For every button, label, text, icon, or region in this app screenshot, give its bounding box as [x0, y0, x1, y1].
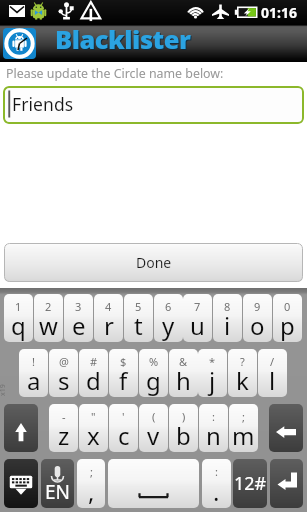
- staticText: Friends: [12, 92, 74, 116]
- button[interactable]: @: [49, 349, 78, 397]
- staticText: ": [91, 409, 96, 424]
- button[interactable]: 7: [183, 294, 212, 342]
- staticText: $: [120, 354, 127, 369]
- staticText: ): [182, 409, 186, 424]
- button[interactable]: 9: [243, 294, 272, 342]
- staticText: *: [209, 354, 216, 369]
- button[interactable]: ;: [229, 404, 258, 452]
- button[interactable]: #: [79, 349, 108, 397]
- staticText: ;: [90, 464, 93, 479]
- button[interactable]: Enter: [270, 459, 303, 508]
- staticText: 1: [15, 299, 22, 314]
- staticText: .: [213, 475, 220, 508]
- staticText: x19: [0, 384, 8, 396]
- staticText: z: [58, 419, 70, 452]
- staticText: (: [152, 409, 156, 424]
- button[interactable]: $: [109, 349, 138, 397]
- button[interactable]: &: [169, 349, 198, 397]
- button[interactable]: %: [139, 349, 168, 397]
- staticText: h: [176, 364, 191, 397]
- staticText: f: [119, 364, 128, 397]
- staticText: m: [232, 419, 255, 452]
- button[interactable]: 4: [94, 294, 123, 342]
- button[interactable]: Backspace: [269, 404, 303, 452]
- staticText: Blacklister: [55, 22, 191, 57]
- button[interactable]: 12#: [233, 459, 267, 508]
- button[interactable]: Space: [108, 459, 199, 508]
- staticText: 5: [135, 299, 142, 314]
- staticText: 7: [194, 299, 201, 314]
- button[interactable]: ': [109, 404, 138, 452]
- button[interactable]: (: [139, 404, 168, 452]
- button[interactable]: 2: [34, 294, 63, 342]
- staticText: #: [90, 354, 98, 369]
- button[interactable]: Friends: [3, 86, 304, 124]
- button[interactable]: :: [202, 459, 231, 508]
- button[interactable]: Hide keyboard: [4, 459, 38, 508]
- staticText: c: [118, 419, 130, 452]
- staticText: EN: [45, 479, 71, 505]
- staticText: 0: [284, 299, 291, 314]
- staticText: :: [212, 409, 215, 424]
- button[interactable]: :: [199, 404, 228, 452]
- staticText: d: [86, 364, 101, 397]
- button[interactable]: !: [19, 349, 48, 397]
- staticText: 12#: [234, 471, 267, 496]
- staticText: ': [122, 409, 125, 424]
- button[interactable]: 5: [124, 294, 153, 342]
- button[interactable]: 1: [4, 294, 33, 342]
- staticText: Please update the Circle name below:: [6, 65, 224, 82]
- staticText: :: [215, 464, 218, 479]
- staticText: t: [134, 309, 143, 342]
- staticText: a: [27, 364, 41, 397]
- staticText: 3: [75, 299, 82, 314]
- staticText: @: [59, 354, 69, 369]
- staticText: s: [58, 364, 70, 397]
- staticText: &: [179, 354, 188, 369]
- staticText: 9: [254, 299, 261, 314]
- staticText: n: [206, 419, 221, 452]
- button[interactable]: EN: [41, 459, 74, 508]
- staticText: k: [236, 364, 249, 397]
- staticText: r: [104, 309, 114, 342]
- staticText: /: [270, 354, 275, 369]
- staticText: ;: [242, 409, 245, 424]
- staticText: i: [224, 309, 231, 342]
- button[interactable]: ": [79, 404, 108, 452]
- staticText: w: [39, 309, 58, 342]
- staticText: 2: [45, 299, 52, 314]
- staticText: l: [269, 364, 276, 397]
- staticText: x: [87, 419, 100, 452]
- staticText: v: [147, 419, 160, 452]
- staticText: y: [162, 309, 175, 342]
- button[interactable]: *: [198, 349, 227, 397]
- staticText: o: [250, 309, 265, 342]
- button[interactable]: ): [169, 404, 198, 452]
- staticText: j: [209, 364, 216, 397]
- button[interactable]: App icon: [3, 28, 36, 59]
- button[interactable]: /: [258, 349, 287, 397]
- staticText: u: [190, 309, 205, 342]
- button[interactable]: ;: [77, 459, 105, 508]
- button[interactable]: Shift: [4, 404, 38, 452]
- staticText: 4: [105, 299, 112, 314]
- staticText: b: [176, 419, 191, 452]
- button[interactable]: 3: [64, 294, 93, 342]
- staticText: -: [62, 409, 66, 424]
- staticText: !: [32, 354, 35, 369]
- staticText: p: [280, 309, 295, 342]
- staticText: e: [72, 309, 86, 342]
- staticText: %: [149, 354, 159, 369]
- button[interactable]: ?: [228, 349, 257, 397]
- button[interactable]: -: [49, 404, 78, 452]
- button[interactable]: Done: [4, 243, 303, 282]
- staticText: 01:16: [261, 3, 297, 22]
- staticText: Done: [136, 253, 172, 272]
- staticText: 8: [224, 299, 231, 314]
- staticText: ?: [240, 354, 245, 369]
- staticText: g: [146, 364, 161, 397]
- button[interactable]: 8: [213, 294, 242, 342]
- button[interactable]: 0: [273, 294, 302, 342]
- staticText: Blacklister: [56, 23, 192, 58]
- button[interactable]: 6: [154, 294, 183, 342]
